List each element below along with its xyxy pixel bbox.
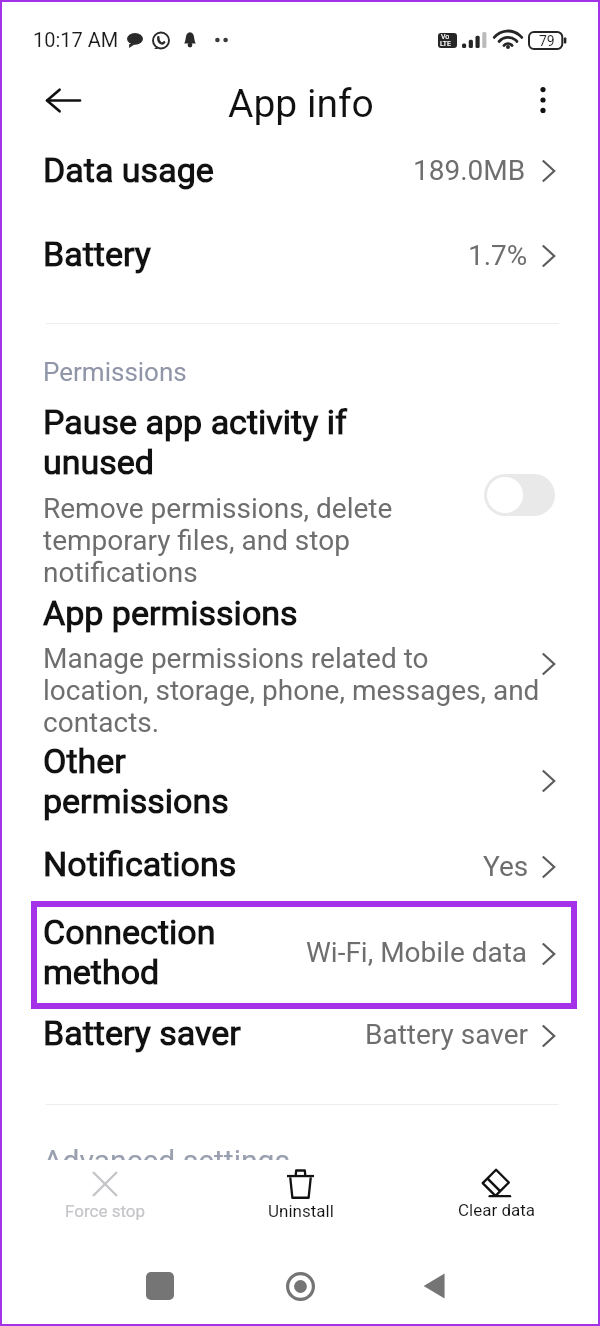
staticText: Pause app activity if unused bbox=[43, 402, 347, 483]
staticText: Wi-Fi, Mobile data bbox=[306, 936, 528, 969]
button[interactable]: Pause app activity if unused bbox=[10, 396, 594, 592]
staticText: App permissions bbox=[43, 593, 298, 633]
staticText: App info bbox=[228, 81, 374, 127]
staticText: Uninstall bbox=[268, 1201, 334, 1221]
staticText: 10:17 AM bbox=[33, 28, 119, 51]
button[interactable]: Recents bbox=[120, 1252, 200, 1320]
staticText: Other permissions bbox=[43, 741, 229, 822]
staticText: 189.0MB bbox=[413, 154, 526, 187]
button[interactable]: Data usage bbox=[10, 138, 594, 194]
staticText: Battery saver bbox=[43, 1013, 241, 1053]
button[interactable]: App permissions bbox=[10, 588, 594, 740]
staticText: LTE bbox=[440, 40, 451, 48]
staticText: Permissions bbox=[43, 357, 187, 387]
button[interactable]: Back bbox=[33, 75, 93, 126]
staticText: Vo bbox=[441, 33, 450, 41]
button[interactable]: Home bbox=[260, 1252, 340, 1320]
staticText: 79 bbox=[539, 33, 555, 49]
staticText: Clear data bbox=[458, 1200, 536, 1220]
staticText: Manage permissions related to location, … bbox=[43, 642, 540, 739]
button[interactable]: More options bbox=[513, 74, 573, 125]
button[interactable]: Other permissions bbox=[10, 736, 594, 826]
button[interactable]: Battery saver bbox=[10, 1002, 594, 1060]
button[interactable]: Clear data bbox=[422, 1162, 570, 1250]
staticText: Force stop bbox=[65, 1201, 146, 1221]
button[interactable]: Connection method bbox=[32, 901, 580, 1011]
staticText: Advanced settings bbox=[43, 1143, 290, 1178]
button[interactable]: Battery bbox=[10, 222, 594, 280]
button[interactable]: Force stop bbox=[32, 1162, 180, 1250]
staticText: Battery saver bbox=[365, 1018, 528, 1051]
button[interactable]: Notifications bbox=[10, 832, 594, 890]
staticText: Notifications bbox=[43, 844, 237, 884]
button[interactable]: Back bbox=[394, 1252, 474, 1320]
staticText: Remove permissions, delete temporary fil… bbox=[43, 492, 393, 589]
button[interactable]: Pause app activity toggle bbox=[484, 474, 555, 516]
button[interactable]: Uninstall bbox=[227, 1162, 375, 1250]
staticText: Battery bbox=[43, 234, 151, 274]
staticText: Yes bbox=[483, 850, 529, 883]
staticText: Connection method bbox=[43, 912, 216, 993]
staticText: 1.7% bbox=[468, 239, 528, 272]
staticText: Data usage bbox=[43, 150, 214, 190]
